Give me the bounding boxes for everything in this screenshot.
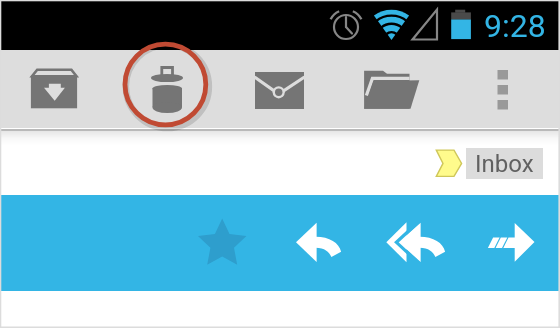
staticText: 9:28	[484, 7, 546, 45]
other: Status bar	[0, 0, 560, 50]
button[interactable]: Delete	[122, 50, 210, 128]
button[interactable]: Inbox	[466, 148, 543, 179]
staticText: Inbox	[475, 150, 534, 178]
